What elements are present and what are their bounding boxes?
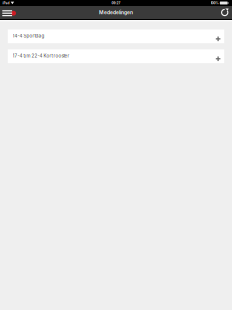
staticText: 17-4 t/m 22-4 Kort rooster [12, 53, 69, 59]
staticText: 09:27 [111, 1, 120, 5]
staticText: iPad [2, 1, 9, 5]
staticText: Mededelingen [99, 9, 133, 15]
staticText: 100% [211, 1, 219, 5]
staticText: 14-4 Sportdag [12, 33, 44, 39]
button[interactable]: Refresh [220, 6, 230, 18]
button[interactable]: 17-4 t/m 22-4 Kort rooster [8, 49, 224, 63]
button[interactable]: Menu [2, 6, 16, 18]
button[interactable]: 14-4 Sportdag [8, 29, 224, 43]
